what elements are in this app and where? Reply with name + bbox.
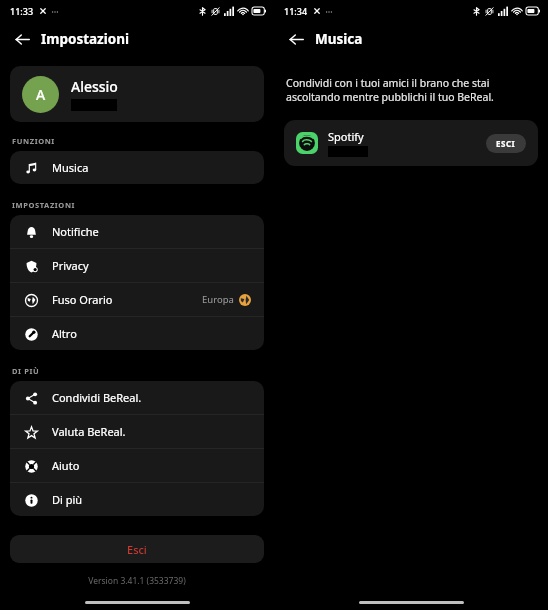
staticText: Fuso Orario <box>52 292 113 307</box>
staticText: Europa <box>202 293 234 306</box>
button[interactable]: Musica <box>10 151 264 184</box>
staticText: DI PIÙ <box>12 366 40 376</box>
button[interactable]: Aiuto <box>10 449 264 482</box>
staticText: Spotify <box>328 129 364 144</box>
staticText: A <box>36 85 46 104</box>
staticText: Musica <box>315 30 363 48</box>
button[interactable]: A <box>10 66 264 122</box>
staticText: Condividi BeReal. <box>52 390 142 405</box>
button[interactable]: Fuso Orario <box>10 283 264 316</box>
staticText: IMPOSTAZIONI <box>12 200 76 210</box>
button[interactable]: Condividi BeReal. <box>10 381 264 414</box>
staticText: Aiuto <box>52 458 80 473</box>
staticText: Musica <box>52 160 89 175</box>
staticText: Valuta BeReal. <box>52 424 126 439</box>
button[interactable]: Di più <box>10 483 264 516</box>
staticText: Privacy <box>52 258 89 273</box>
staticText: FUNZIONI <box>12 136 55 146</box>
button[interactable]: Back <box>284 27 308 51</box>
staticText: Condividi con i tuoi amici il brano che … <box>286 76 494 104</box>
staticText: 11:33 <box>10 5 34 17</box>
button[interactable]: Back <box>10 27 34 51</box>
staticText: Notifiche <box>52 224 99 239</box>
staticText: Impostazioni <box>41 30 130 48</box>
button[interactable]: ESCI <box>486 134 526 153</box>
button[interactable]: Altro <box>10 317 264 350</box>
staticText: Altro <box>52 326 77 341</box>
staticText: 11:34 <box>284 5 308 17</box>
button[interactable]: Privacy <box>10 249 264 282</box>
staticText: Esci <box>127 542 147 557</box>
staticText: Version 3.41.1 (3533739) <box>0 575 274 587</box>
staticText: ESCI <box>496 138 516 149</box>
staticText: Alessio <box>71 77 118 96</box>
button[interactable]: Spotify <box>284 120 538 166</box>
staticText: Di più <box>52 492 83 507</box>
button[interactable]: Esci <box>10 535 264 563</box>
button[interactable]: Notifiche <box>10 215 264 248</box>
button[interactable]: Valuta BeReal. <box>10 415 264 448</box>
